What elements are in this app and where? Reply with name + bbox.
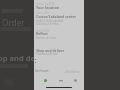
button[interactable]: Account [71, 76, 80, 85]
staticText: Costco/Lakeland center [36, 14, 77, 19]
button[interactable]: Orders [56, 76, 65, 85]
button[interactable]: Home [41, 76, 50, 85]
staticText: 2 hr 28 min [65, 70, 80, 74]
staticText: Deliver by 9:45 [36, 2, 54, 6]
staticText: op and deli [0, 53, 40, 63]
staticText: Estimated 45 min [36, 52, 58, 56]
staticText: Shop and deliver [36, 48, 65, 53]
staticText: Pay $12.00 [36, 29, 50, 33]
staticText: Store offer [36, 11, 49, 15]
staticText: See hours [35, 69, 49, 73]
staticText: Your location [36, 5, 60, 10]
staticText: Arrives on time [36, 36, 56, 40]
staticText: Cedar Lift Boulevard [36, 19, 63, 23]
staticText: Order [2, 17, 25, 28]
staticText: Delivery 2.8 miles [36, 22, 60, 26]
staticText: Reflect [36, 31, 48, 36]
